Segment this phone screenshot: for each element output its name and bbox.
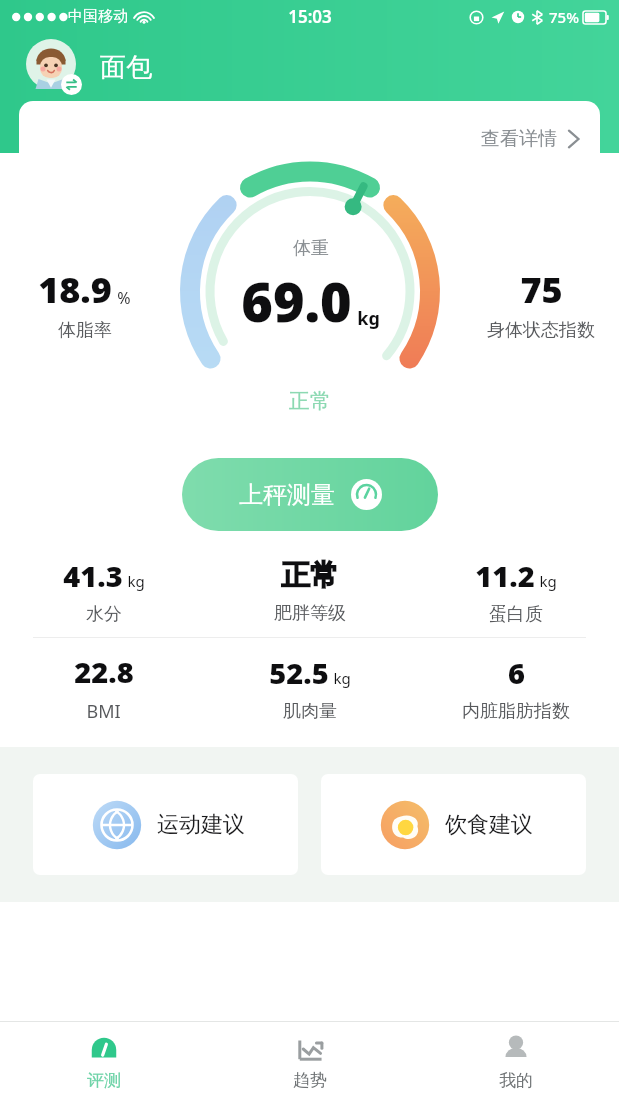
staticText: 内脏脂肪指数 xyxy=(462,700,570,723)
button[interactable]: 运动建议 xyxy=(33,774,298,875)
button[interactable]: 22.8 xyxy=(0,638,207,738)
staticText: 查看详情 xyxy=(481,127,557,151)
staticText: 11.2 xyxy=(475,556,535,595)
button[interactable]: 上秤测量 xyxy=(182,458,438,531)
staticText: 正常 xyxy=(281,557,339,594)
staticText: 肌肉量 xyxy=(283,700,337,723)
staticText: 中国移动 xyxy=(68,7,128,26)
staticText: kg xyxy=(539,571,557,591)
staticText: 正常 xyxy=(289,388,331,414)
staticText: 水分 xyxy=(86,603,122,626)
staticText: 身体状态指数 xyxy=(487,319,595,342)
staticText: 18.9 xyxy=(38,265,112,314)
staticText: 趋势 xyxy=(293,1070,327,1091)
staticText: kg xyxy=(357,306,380,331)
staticText: % xyxy=(117,287,131,309)
staticText: 体重 xyxy=(293,237,329,260)
staticText: 15:03 xyxy=(288,5,332,28)
button[interactable]: Switch user xyxy=(26,39,82,95)
staticText: 75% xyxy=(549,7,579,27)
staticText: 6 xyxy=(508,653,525,692)
staticText: 52.5 xyxy=(269,653,329,692)
staticText: 我的 xyxy=(499,1070,533,1091)
button[interactable]: 41.3 xyxy=(0,545,207,637)
staticText: 蛋白质 xyxy=(489,603,543,626)
staticText: 运动建议 xyxy=(157,811,245,839)
staticText: 饮食建议 xyxy=(445,811,533,839)
button[interactable]: 查看详情 xyxy=(477,123,584,155)
staticText: 评测 xyxy=(87,1070,121,1091)
staticText: kg xyxy=(127,571,145,591)
button[interactable]: 11.2 xyxy=(413,545,619,637)
staticText: 41.3 xyxy=(63,556,123,595)
staticText: 面包 xyxy=(100,51,152,84)
button[interactable]: 我的 xyxy=(413,1022,619,1101)
button[interactable]: 趋势 xyxy=(207,1022,413,1101)
button[interactable]: 饮食建议 xyxy=(321,774,586,875)
button[interactable]: 评测 xyxy=(0,1022,207,1101)
staticText: 69.0 xyxy=(241,264,352,338)
staticText: 肥胖等级 xyxy=(274,602,346,625)
staticText: BMI xyxy=(86,699,121,724)
button[interactable]: 6 xyxy=(413,638,619,738)
staticText: 上秤测量 xyxy=(239,480,335,510)
staticText: 22.8 xyxy=(74,652,134,691)
staticText: kg xyxy=(333,668,351,688)
button[interactable]: 正常 xyxy=(207,545,413,637)
button[interactable]: 52.5 xyxy=(207,638,413,738)
staticText: 体脂率 xyxy=(58,319,112,342)
staticText: 75 xyxy=(520,265,563,314)
